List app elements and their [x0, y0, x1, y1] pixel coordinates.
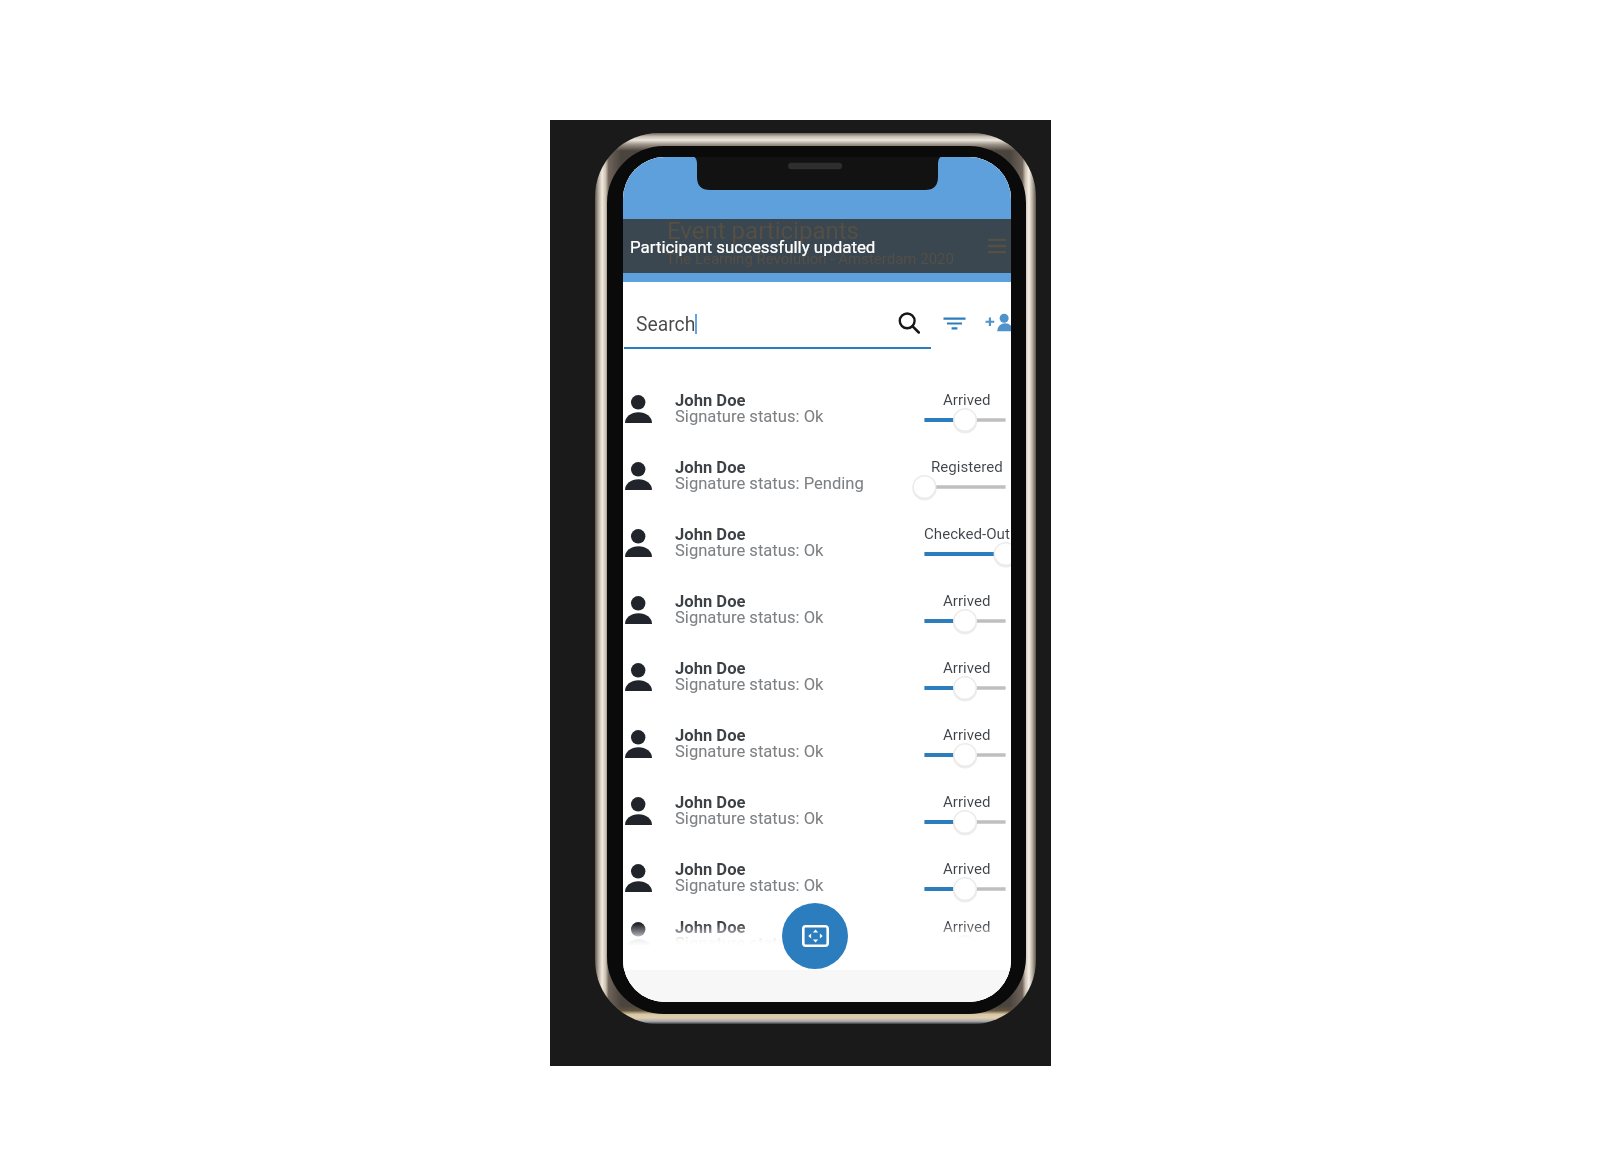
- staticText: Signature status: Ok: [675, 809, 824, 828]
- staticText: Signature status: Pending: [675, 474, 864, 493]
- staticText: Participant successfully updated: [630, 237, 876, 257]
- staticText: Signature status: Ok: [675, 608, 824, 627]
- button[interactable]: John Doe: [623, 658, 1011, 725]
- button[interactable]: John Doe: [623, 591, 1011, 658]
- staticText: Arrived: [943, 726, 991, 744]
- button[interactable]: Search: [624, 292, 931, 348]
- button[interactable]: John Doe: [623, 390, 1011, 457]
- button[interactable]: John Doe: [623, 792, 1011, 859]
- staticText: John Doe: [675, 391, 746, 410]
- staticText: Signature status: Ok: [675, 876, 824, 895]
- button[interactable]: Add participant: [985, 309, 1011, 338]
- staticText: Search: [636, 313, 696, 336]
- staticText: John Doe: [675, 918, 746, 937]
- staticText: Arrived: [943, 592, 991, 610]
- button[interactable]: John Doe: [623, 859, 1011, 926]
- staticText: Signature status: Ok: [675, 675, 824, 694]
- staticText: Event participants: [667, 217, 859, 245]
- staticText: Arrived: [943, 391, 991, 409]
- staticText: John Doe: [675, 525, 746, 544]
- staticText: John Doe: [675, 659, 746, 678]
- staticText: Arrived: [943, 659, 991, 677]
- button[interactable]: John Doe: [623, 917, 1011, 984]
- button[interactable]: Menu: [988, 238, 1006, 254]
- staticText: John Doe: [675, 726, 746, 745]
- staticText: Registered: [931, 458, 1003, 476]
- staticText: Arrived: [943, 918, 991, 936]
- staticText: John Doe: [675, 592, 746, 611]
- button[interactable]: John Doe: [623, 524, 1011, 591]
- button[interactable]: Filter: [940, 309, 969, 338]
- staticText: The Learning Revolution - Amsterdam 2020: [666, 250, 954, 268]
- staticText: Signature status: Ok: [675, 541, 824, 560]
- staticText: Arrived: [943, 793, 991, 811]
- staticText: Signature status: Ok: [675, 742, 824, 761]
- staticText: John Doe: [675, 793, 746, 812]
- button[interactable]: John Doe: [623, 457, 1011, 524]
- staticText: Arrived: [943, 860, 991, 878]
- staticText: Signature status: Ok: [675, 934, 824, 953]
- staticText: Signature status: Ok: [675, 407, 824, 426]
- button[interactable]: Search: [895, 309, 924, 338]
- staticText: Checked-Out: [924, 525, 1010, 543]
- staticText: John Doe: [675, 458, 746, 477]
- button[interactable]: John Doe: [623, 725, 1011, 792]
- staticText: John Doe: [675, 860, 746, 879]
- button[interactable]: Scan QR code: [782, 903, 848, 969]
